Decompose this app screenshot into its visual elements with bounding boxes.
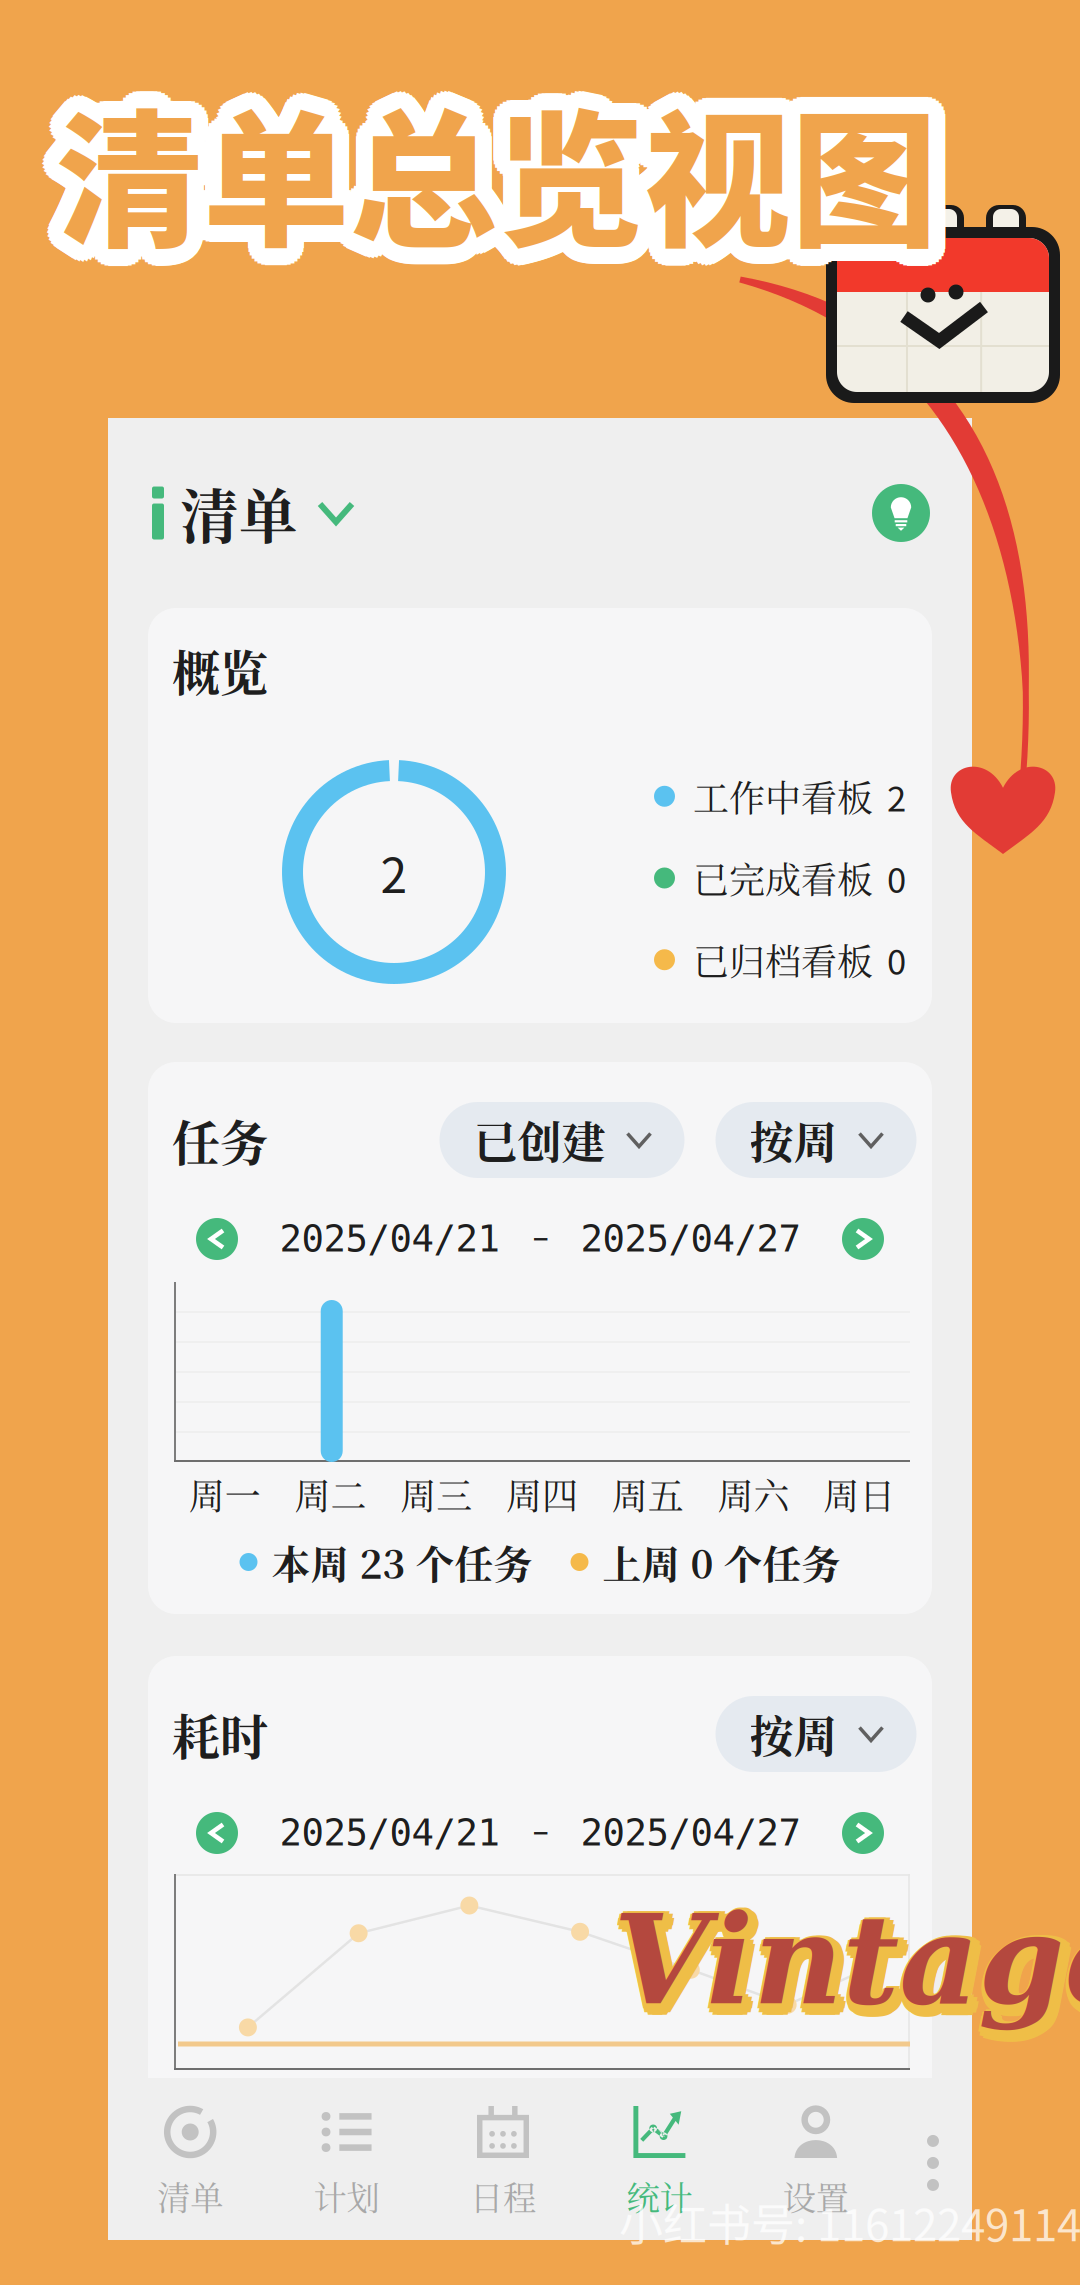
button[interactable]: 设置 bbox=[738, 2106, 894, 2220]
staticText: Vintage bbox=[615, 1886, 1080, 2030]
button[interactable]: 清单 bbox=[112, 2106, 268, 2220]
button[interactable]: Tips bbox=[872, 484, 930, 542]
staticText: 清单总览视图 bbox=[39, 64, 921, 276]
staticText: 清单总览视图 bbox=[73, 68, 955, 280]
staticText: 小红书号: 11612249114 bbox=[619, 2190, 1080, 2254]
staticText: 清单总览视图 bbox=[56, 64, 938, 276]
staticText: 周三 bbox=[400, 1468, 472, 1520]
staticText: 耗时 bbox=[172, 1699, 268, 1768]
staticText: 清单总览视图 bbox=[71, 71, 953, 284]
staticText: 周二 bbox=[295, 2086, 367, 2138]
staticText: 周四 bbox=[506, 1468, 578, 1520]
button[interactable]: Next week bbox=[842, 1218, 884, 1260]
staticText: 清单总览视图 bbox=[69, 74, 951, 287]
staticText: 清单总览视图 bbox=[58, 52, 940, 265]
staticText: 周四 bbox=[506, 2086, 578, 2138]
staticText: 清单总览视图 bbox=[67, 77, 949, 289]
staticText: 清单总览视图 bbox=[39, 60, 921, 272]
staticText: Vintage bbox=[613, 1888, 1080, 2032]
staticText: Vintage bbox=[615, 1900, 1080, 2044]
staticText: 本周 23 个任务 bbox=[271, 1534, 532, 1590]
staticText: 清单总览视图 bbox=[64, 56, 946, 268]
staticText: 0 bbox=[887, 935, 906, 985]
staticText: 清单总览视图 bbox=[48, 56, 930, 268]
staticText: 清单总览视图 bbox=[61, 54, 943, 266]
button[interactable]: 已创建 bbox=[439, 1102, 684, 1178]
staticText: 2 bbox=[887, 771, 906, 821]
staticText: 任务 bbox=[172, 1105, 268, 1174]
staticText: 清单总览视图 bbox=[50, 65, 932, 277]
staticText: 清单总览视图 bbox=[57, 70, 939, 282]
staticText: 清单总览视图 bbox=[63, 48, 945, 261]
staticText: 清单总览视图 bbox=[54, 75, 936, 288]
staticText: 清单总览视图 bbox=[49, 79, 931, 291]
button[interactable]: 统计 bbox=[581, 2106, 738, 2220]
staticText: 2 bbox=[380, 837, 407, 907]
staticText: 0 bbox=[887, 853, 906, 903]
staticText: 清单总览视图 bbox=[61, 74, 943, 286]
staticText: Vintage bbox=[610, 1893, 1080, 2037]
staticText: 清单总览视图 bbox=[63, 79, 945, 291]
staticText: 清单总览视图 bbox=[48, 72, 930, 284]
staticText: 清单总览视图 bbox=[43, 74, 925, 287]
staticText: 清单总览视图 bbox=[56, 47, 938, 259]
staticText: 清单总览视图 bbox=[45, 62, 927, 274]
staticText: 清单总览视图 bbox=[41, 71, 923, 284]
staticText: 已归档看板 bbox=[693, 934, 873, 986]
button[interactable]: 按周 bbox=[715, 1696, 916, 1772]
button[interactable]: 按周 bbox=[715, 1102, 916, 1178]
staticText: 清单总览视图 bbox=[71, 56, 953, 269]
staticText: 已完成看板 bbox=[693, 852, 873, 904]
staticText: 清单 bbox=[157, 2172, 223, 2220]
staticText: Vintage bbox=[620, 1886, 1080, 2030]
staticText: 清单总览视图 bbox=[43, 53, 925, 266]
staticText: 清单总览视图 bbox=[51, 74, 933, 286]
staticText: 计划 bbox=[314, 2172, 380, 2220]
staticText: 2025/04/21 － 2025/04/27 bbox=[279, 1809, 800, 1856]
staticText: 清单总览视图 bbox=[41, 56, 923, 269]
staticText: Vintage bbox=[612, 1889, 1080, 2033]
staticText: 清单总览视图 bbox=[67, 62, 949, 274]
staticText: 清单总览视图 bbox=[62, 62, 944, 275]
staticText: 清单总览视图 bbox=[52, 59, 934, 272]
button[interactable]: More bbox=[894, 2108, 972, 2218]
staticText: 清单总览视图 bbox=[45, 77, 927, 289]
staticText: 周一 bbox=[189, 2086, 261, 2138]
staticText: 清单总览视图 bbox=[66, 69, 948, 281]
staticText: 清单总览视图 bbox=[45, 66, 927, 278]
staticText: 清单总览视图 bbox=[73, 64, 955, 276]
button[interactable]: 计划 bbox=[268, 2106, 425, 2220]
staticText: 清单总览视图 bbox=[39, 68, 921, 280]
staticText: 清单总览视图 bbox=[60, 80, 942, 293]
staticText: 清单总览视图 bbox=[46, 59, 928, 271]
staticText: Vintage bbox=[623, 1897, 1080, 2041]
staticText: 概览 bbox=[172, 635, 268, 704]
button[interactable]: Previous week bbox=[196, 1218, 238, 1260]
staticText: Vintage bbox=[624, 1893, 1080, 2037]
staticText: 清单总览视图 bbox=[58, 58, 940, 270]
staticText: 清单总览视图 bbox=[51, 54, 933, 266]
staticText: 清单总览视图 bbox=[73, 60, 955, 272]
staticText: 周二 bbox=[295, 1468, 367, 1520]
button[interactable]: Previous week bbox=[196, 1812, 238, 1854]
staticText: 2025/04/21 － 2025/04/27 bbox=[279, 1215, 800, 1262]
staticText: 清单总览视图 bbox=[49, 48, 931, 261]
staticText: Vintage bbox=[612, 1897, 1080, 2041]
button[interactable]: Next week bbox=[842, 1812, 884, 1854]
staticText: 按周 bbox=[749, 1702, 837, 1766]
staticText: 清单总览视图 bbox=[60, 47, 942, 260]
staticText: 周五 bbox=[612, 1468, 684, 1520]
staticText: 清单总览视图 bbox=[60, 60, 942, 272]
button[interactable]: 日程 bbox=[425, 2106, 581, 2220]
staticText: 清单总览视图 bbox=[60, 68, 942, 281]
staticText: 周日 bbox=[823, 2086, 895, 2138]
staticText: Vintage bbox=[620, 1900, 1080, 2044]
staticText: 清单总览视图 bbox=[50, 62, 932, 274]
staticText: Vintage bbox=[623, 1889, 1080, 2033]
staticText: 清单总览视图 bbox=[66, 59, 948, 271]
staticText: 周五 bbox=[612, 2086, 684, 2138]
button[interactable]: 清单 bbox=[152, 471, 352, 555]
staticText: 周六 bbox=[717, 1468, 789, 1520]
